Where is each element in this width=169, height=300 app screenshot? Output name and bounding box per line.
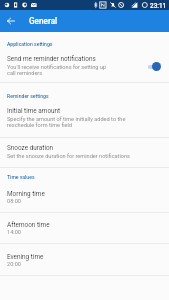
button[interactable] xyxy=(0,48,169,82)
staticText: Evening time xyxy=(7,253,44,261)
staticText: Initial time amount xyxy=(7,107,61,115)
staticText: General xyxy=(29,16,58,26)
staticText: 20:00 xyxy=(7,261,21,268)
button[interactable] xyxy=(0,183,169,212)
button[interactable]: Toggle reminder notifications xyxy=(147,61,163,71)
staticText: 23:11 xyxy=(150,2,167,10)
staticText: Reminder settings xyxy=(7,93,49,99)
staticText: Time values xyxy=(7,174,35,180)
staticText: Set the snooze duration for reminder not… xyxy=(7,153,130,160)
staticText: Send me reminder notifications xyxy=(7,55,96,63)
button[interactable]: Navigate up xyxy=(2,12,20,30)
staticText: 14:00 xyxy=(7,229,21,236)
button[interactable] xyxy=(0,246,169,275)
button[interactable] xyxy=(0,138,169,167)
staticText: Afternoon time xyxy=(7,221,50,229)
button[interactable] xyxy=(0,102,169,137)
staticText: Morning time xyxy=(7,190,45,198)
button[interactable] xyxy=(0,214,169,243)
staticText: 08:00 xyxy=(7,198,21,205)
staticText: Snooze duration xyxy=(7,144,54,152)
staticText: Specify the amount of time initially add… xyxy=(7,116,126,128)
staticText: You'll receive notifications for setting… xyxy=(7,64,107,76)
staticText: Application settings xyxy=(7,41,53,47)
